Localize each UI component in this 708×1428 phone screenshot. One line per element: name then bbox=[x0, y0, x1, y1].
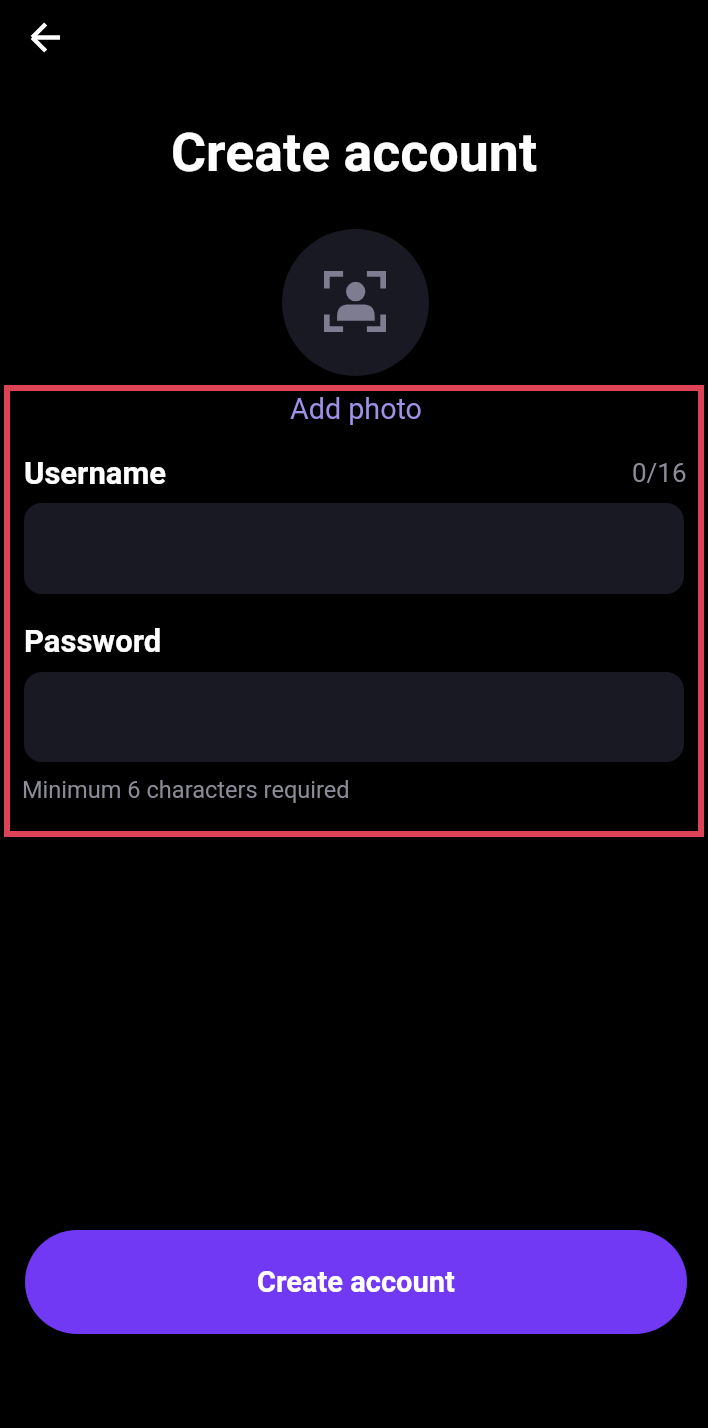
button[interactable]: Back bbox=[9, 1, 81, 73]
staticText: Username bbox=[24, 455, 167, 491]
staticText: Password bbox=[24, 623, 162, 659]
button[interactable]: Add photo bbox=[282, 229, 429, 376]
button[interactable]: Add photo bbox=[278, 386, 430, 432]
button[interactable]: Create account bbox=[25, 1230, 687, 1334]
staticText: Create account bbox=[0, 121, 708, 184]
staticText: 0/16 bbox=[632, 458, 687, 488]
staticText: Minimum 6 characters required bbox=[22, 776, 350, 804]
staticText: Create account bbox=[257, 1265, 455, 1299]
